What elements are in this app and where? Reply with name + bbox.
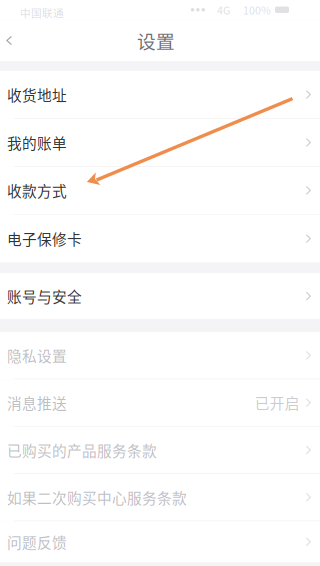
staticText: 已开启: [255, 392, 300, 413]
staticText: 问题反馈: [7, 531, 67, 552]
staticText: 消息推送: [7, 392, 67, 413]
button[interactable]: 账号与安全: [0, 273, 320, 319]
staticText: 电子保修卡: [7, 228, 82, 249]
staticText: 4G: [217, 2, 230, 17]
button[interactable]: 问题反馈: [0, 521, 320, 562]
staticText: 如果二次购买中心服务条款: [7, 487, 187, 508]
button[interactable]: 隐私设置: [0, 332, 320, 379]
button[interactable]: 消息推送: [0, 379, 320, 427]
staticText: 收货地址: [7, 84, 67, 105]
staticText: 账号与安全: [7, 285, 82, 307]
button[interactable]: Back: [0, 20, 26, 61]
staticText: 设置: [137, 27, 175, 54]
staticText: 中国联通: [20, 5, 64, 20]
staticText: 100%: [243, 2, 271, 17]
staticText: 已购买的产品服务条款: [7, 439, 157, 461]
staticText: 隐私设置: [7, 345, 67, 366]
staticText: 我的账单: [7, 132, 67, 153]
button[interactable]: 我的账单: [0, 119, 320, 167]
button[interactable]: 收货地址: [0, 71, 320, 119]
button[interactable]: 电子保修卡: [0, 215, 320, 263]
staticText: 收款方式: [7, 180, 67, 201]
button[interactable]: 收款方式: [0, 167, 320, 215]
button[interactable]: 已购买的产品服务条款: [0, 427, 320, 474]
button[interactable]: 如果二次购买中心服务条款: [0, 474, 320, 521]
